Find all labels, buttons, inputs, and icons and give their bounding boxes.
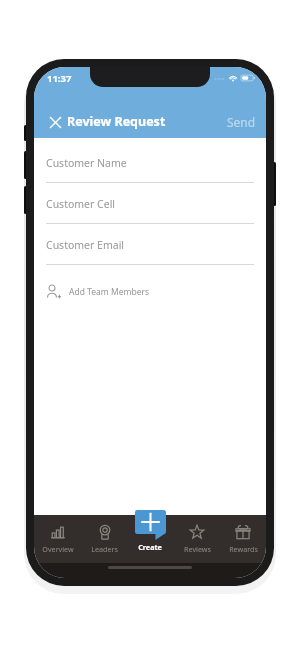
staticText: Review Request: [67, 113, 166, 130]
staticText: 11:37: [47, 72, 72, 85]
staticText: Add Team Members: [69, 286, 150, 298]
staticText: Customer Name: [46, 156, 127, 170]
button[interactable]: Add Team Members: [46, 279, 254, 304]
button[interactable]: Customer Email: [34, 238, 266, 265]
staticText: Leaders: [91, 544, 118, 554]
staticText: Create: [138, 542, 162, 552]
staticText: Customer Cell: [46, 197, 116, 211]
button[interactable]: Create: [124, 510, 176, 562]
button[interactable]: Send: [221, 110, 262, 134]
button[interactable]: Reviews: [174, 515, 220, 563]
button[interactable]: Leaders: [81, 515, 128, 563]
button[interactable]: Customer Name: [34, 156, 266, 183]
button[interactable]: Rewards: [220, 515, 266, 563]
staticText: Reviews: [184, 544, 211, 554]
button[interactable]: Overview: [34, 515, 81, 563]
button[interactable]: Close: [42, 109, 68, 135]
staticText: Overview: [42, 544, 74, 554]
button[interactable]: Customer Cell: [34, 197, 266, 224]
staticText: Rewards: [229, 544, 258, 554]
staticText: Customer Email: [46, 238, 125, 252]
staticText: Send: [227, 114, 256, 130]
